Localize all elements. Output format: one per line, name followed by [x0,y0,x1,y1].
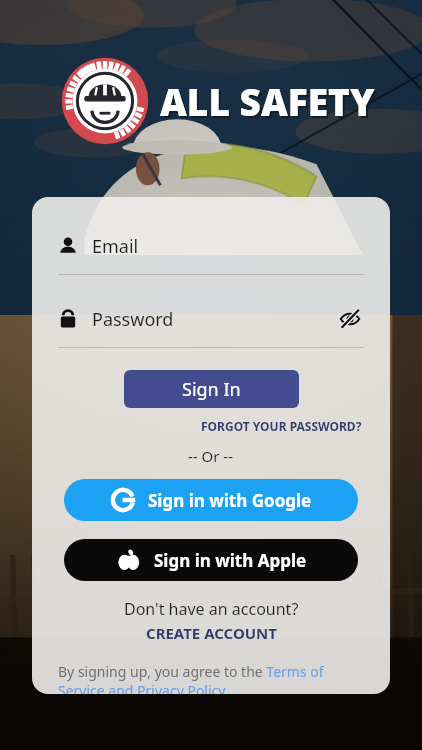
button[interactable]: By signing up, you agree to the Terms of… [58,662,364,694]
button[interactable]: Sign In [124,370,299,408]
staticText: By signing up, you agree to the Terms of… [58,662,364,694]
staticText: FORGOT YOUR PASSWORD? [201,418,362,434]
staticText: -- Or -- [188,446,234,466]
button[interactable]: Password [58,304,364,334]
button[interactable]: FORGOT YOUR PASSWORD? [199,416,364,436]
staticText: Sign in with Google [148,489,312,512]
button[interactable]: Email [58,231,364,261]
staticText: CREATE ACCOUNT [146,623,277,643]
button[interactable]: Sign in with Apple [64,539,358,581]
staticText: ALL SAFETY [162,78,377,128]
staticText: Password [92,307,174,332]
staticText: Sign In [182,377,241,402]
staticText: Don't have an account? [124,598,299,620]
staticText: Sign in with Apple [154,549,307,572]
staticText: ALL SAFETY [160,76,375,126]
button[interactable]: Show password [336,305,364,333]
button[interactable]: CREATE ACCOUNT [144,621,279,645]
button[interactable]: Sign in with Google [64,479,358,521]
staticText: Email [92,234,139,259]
